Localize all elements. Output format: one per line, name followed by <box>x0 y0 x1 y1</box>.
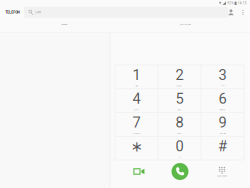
button[interactable]: KONTAKTE <box>125 18 245 31</box>
button[interactable]: 0 <box>158 136 201 160</box>
button[interactable]: LETZTE <box>9 18 119 31</box>
staticText: 4 <box>132 90 140 107</box>
button[interactable]: 4 <box>115 89 158 113</box>
button[interactable]: 5 <box>158 89 201 113</box>
staticText: MNO <box>219 108 225 111</box>
staticText: TUV <box>177 132 182 135</box>
staticText: # <box>218 138 227 155</box>
staticText: 3 <box>218 66 226 84</box>
button[interactable]: 1 <box>115 65 158 89</box>
staticText: Ausblenden <box>217 175 227 177</box>
button[interactable]: 9 <box>201 112 244 136</box>
staticText: ∞ <box>135 84 137 87</box>
staticText: Suche <box>35 11 41 14</box>
button[interactable]: # <box>201 136 244 160</box>
staticText: 2 <box>175 66 183 84</box>
staticText: DEF <box>220 84 224 87</box>
staticText: KONTAKTE <box>179 23 190 26</box>
staticText: GHI <box>134 108 139 111</box>
button[interactable]: 3 <box>201 65 244 89</box>
button[interactable]: Call <box>167 159 193 183</box>
staticText: TELEFON <box>5 10 19 14</box>
staticText: 9 <box>218 114 226 131</box>
staticText: LETZTE <box>61 23 67 26</box>
button[interactable]: 7 <box>115 112 158 136</box>
button[interactable]: 2 <box>158 65 201 89</box>
staticText: ∗ <box>130 138 142 155</box>
staticText: ABC <box>176 84 182 87</box>
button[interactable]: Contacts <box>225 6 236 19</box>
staticText: + <box>179 155 180 158</box>
button[interactable]: 8 <box>158 112 201 136</box>
staticText: 7 <box>132 114 140 131</box>
staticText: 1 <box>132 66 140 84</box>
button[interactable]: Video call <box>126 160 152 182</box>
staticText: 6 <box>218 90 226 107</box>
staticText: PQRS <box>133 132 140 135</box>
staticText: 0 <box>175 138 183 155</box>
staticText: 14:15 <box>238 1 247 5</box>
button[interactable]: 6 <box>201 89 244 113</box>
staticText: 92% <box>227 1 233 5</box>
staticText: 5 <box>175 90 183 107</box>
staticText: 8 <box>175 114 183 131</box>
button[interactable]: Hide keypad <box>206 161 238 183</box>
button[interactable]: More options <box>238 6 247 19</box>
staticText: JKL <box>177 108 181 111</box>
button[interactable]: ∗ <box>115 136 158 160</box>
staticText: WXYZ <box>219 132 225 135</box>
